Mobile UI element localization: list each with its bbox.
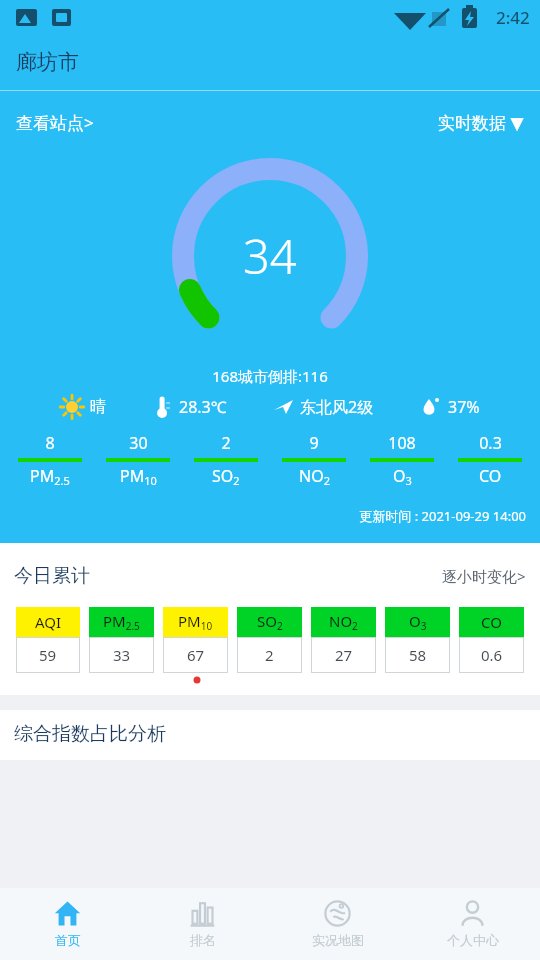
staticText: 实况地图 [312,932,364,948]
staticText: 9 [309,432,319,454]
staticText: 30 [129,432,148,454]
staticText: 33 [113,645,131,665]
staticText: 28.3℃ [179,396,227,418]
button[interactable]: 排名 [135,888,270,960]
staticText: 逐小时变化> [442,566,526,586]
staticText: 108 [388,432,416,454]
staticText: 8 [45,432,55,454]
staticText: 实时数据 ▼ [438,111,524,134]
button[interactable]: 0.3 [448,432,532,487]
button[interactable]: 实况地图 [270,888,405,960]
staticText: 37% [448,396,480,418]
staticText: PM2.5 [103,611,140,633]
staticText: 晴 [90,397,106,417]
button[interactable]: 晴 [60,395,106,419]
staticText: 59 [39,645,57,665]
staticText: O3 [393,465,412,489]
staticText: CO [481,612,502,632]
staticText: 今日累计 [14,564,90,588]
staticText: 34 [243,224,297,288]
staticText: PM10 [178,611,213,633]
button[interactable]: 28.3℃ [152,395,227,419]
staticText: 67 [187,645,205,665]
staticText: PM10 [120,465,157,489]
button[interactable]: O3 [385,607,450,673]
staticText: 查看站点> [16,111,94,134]
staticText: AQI [35,612,62,632]
button[interactable]: 9 [272,432,356,489]
staticText: CO [479,465,502,487]
staticText: 2:42 [496,6,530,29]
button[interactable]: 37% [420,395,480,419]
button[interactable]: 实时数据 ▼ [422,101,540,144]
staticText: 个人中心 [447,932,499,948]
button[interactable]: 2 [184,432,268,489]
button[interactable]: 8 [8,432,92,489]
button[interactable]: PM2.5 [89,607,154,673]
staticText: NO2 [329,611,358,633]
staticText: O3 [409,611,427,633]
staticText: 58 [409,645,427,665]
button[interactable]: CO [459,607,524,673]
button[interactable]: 首页 [0,888,135,960]
staticText: SO2 [212,465,240,489]
button[interactable]: AQI [16,607,80,673]
staticText: 综合指数占比分析 [14,722,166,746]
staticText: 0.3 [479,432,502,454]
staticText: SO2 [257,611,283,633]
staticText: 东北风2级 [300,396,374,418]
staticText: 首页 [55,932,81,948]
staticText: 27 [335,645,353,665]
staticText: 2 [221,432,231,454]
staticText: 2 [265,645,274,665]
button[interactable]: 个人中心 [405,888,540,960]
button[interactable]: 30 [96,432,180,489]
staticText: NO2 [299,465,330,489]
staticText: 廊坊市 [16,49,79,75]
staticText: PM2.5 [30,465,70,489]
button[interactable]: NO2 [311,607,376,673]
staticText: 排名 [190,932,216,948]
staticText: 更新时间 : 2021-09-29 14:00 [0,507,526,525]
button[interactable]: 查看站点> [0,101,110,144]
button[interactable]: 东北风2级 [272,395,374,419]
staticText: 0.6 [481,645,503,665]
staticText: 168城市倒排:116 [0,366,540,386]
button[interactable]: 逐小时变化> [428,560,540,592]
button[interactable]: PM10 [163,607,228,673]
button[interactable]: 108 [360,432,444,489]
button[interactable]: SO2 [237,607,302,673]
